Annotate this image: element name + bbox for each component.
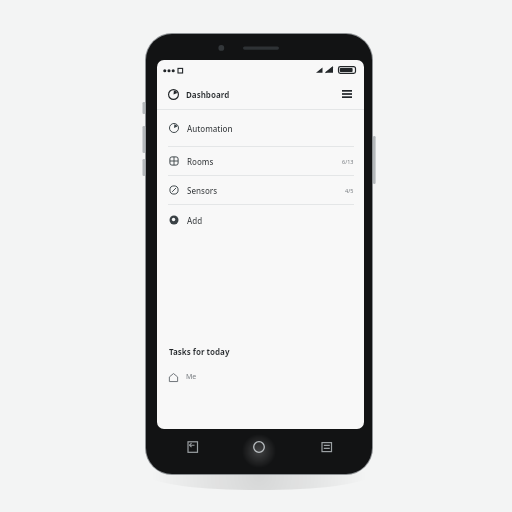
- staticText: Rooms: [187, 156, 214, 167]
- staticText: Dashboard: [186, 89, 230, 100]
- button[interactable]: Me: [157, 369, 364, 385]
- staticText: Tasks for today: [169, 346, 230, 357]
- staticText: Automation: [187, 123, 233, 134]
- button[interactable]: Sensors: [157, 176, 364, 204]
- staticText: 6/13: [342, 158, 354, 165]
- button[interactable]: Automation: [157, 110, 364, 146]
- button[interactable]: Add: [157, 205, 364, 235]
- button[interactable]: Rooms: [157, 147, 364, 175]
- button[interactable]: Menu: [339, 84, 355, 104]
- staticText: 4/5: [345, 187, 354, 194]
- staticText: Sensors: [187, 185, 218, 196]
- staticText: Add: [187, 215, 203, 226]
- staticText: Me: [186, 372, 197, 382]
